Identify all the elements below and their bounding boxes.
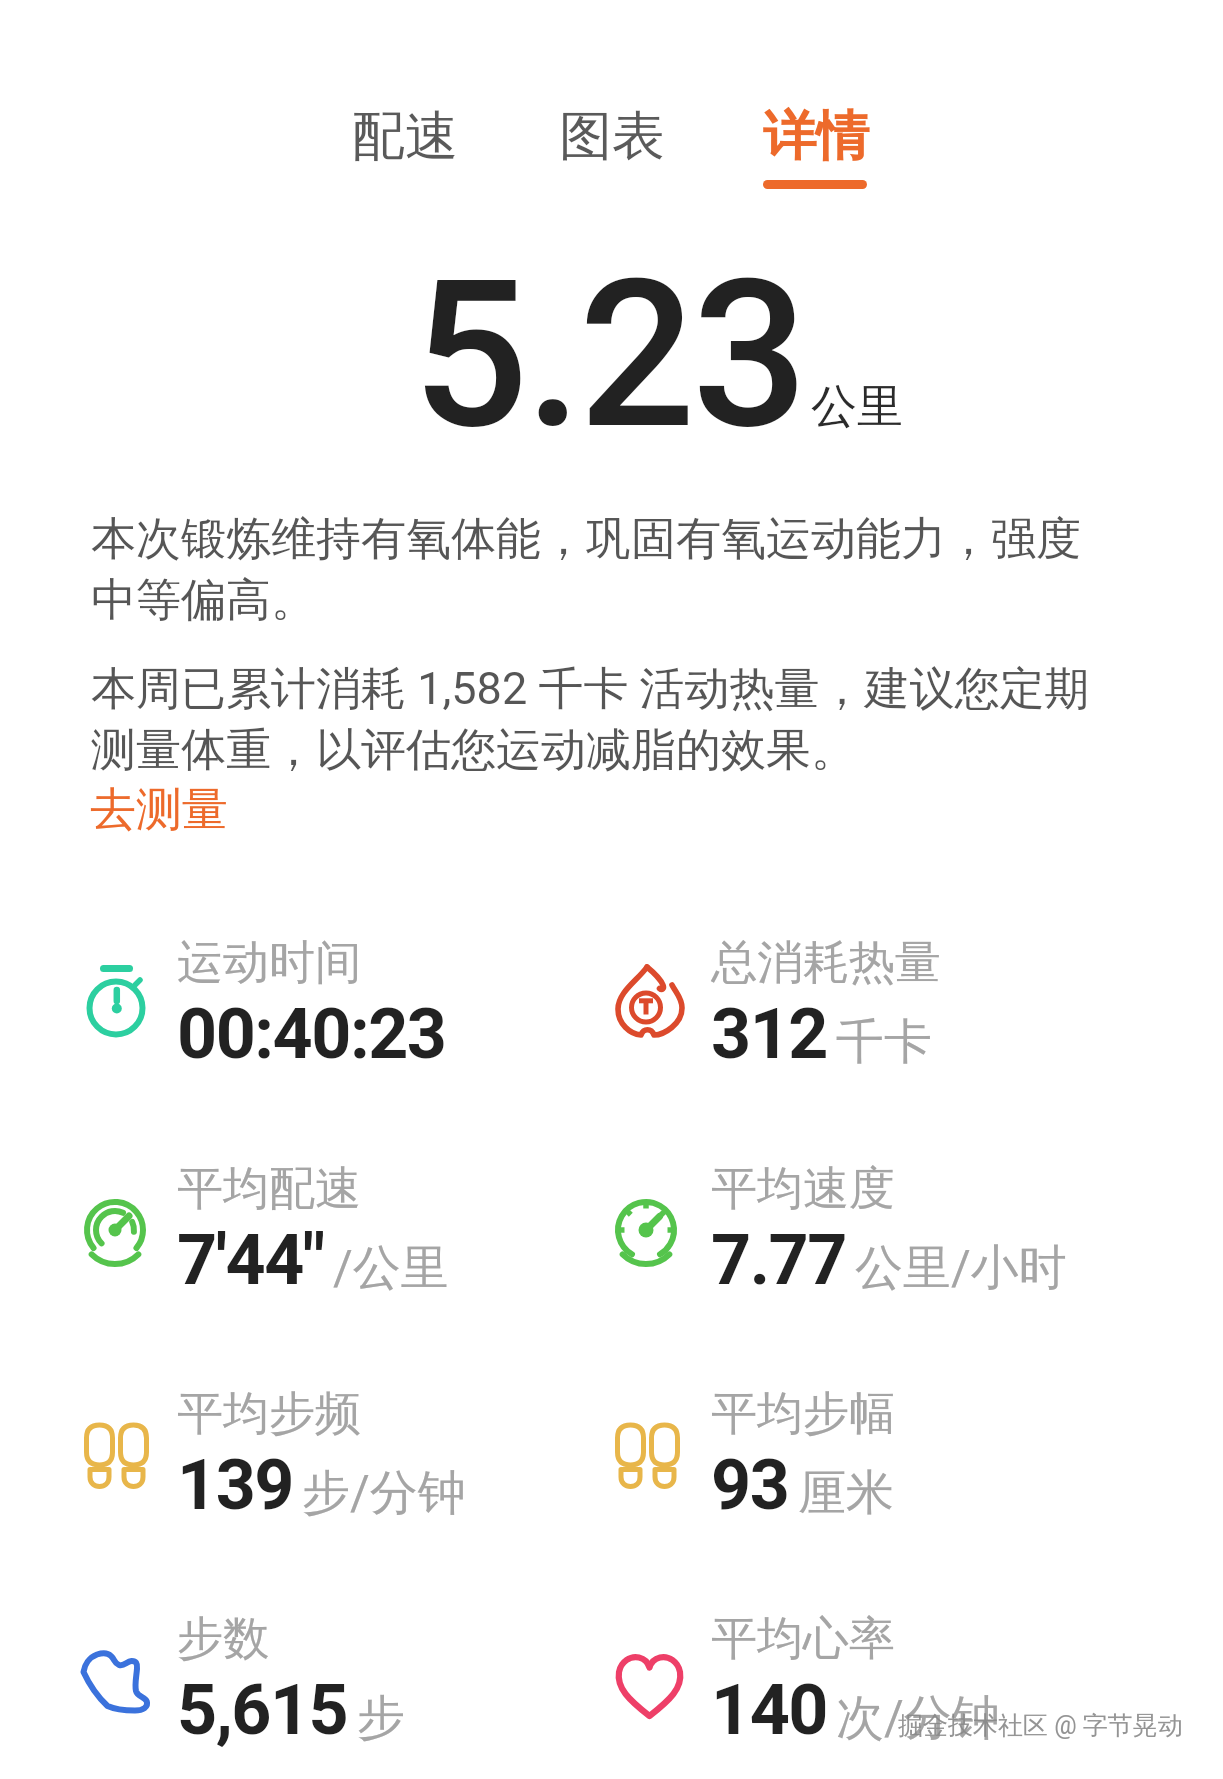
staticText: 步 [357,1688,405,1748]
staticText: 厘米 [798,1463,894,1523]
staticText: 运动时间 [177,934,361,992]
staticText: 千卡 [836,1012,932,1072]
button[interactable]: 图表 [559,103,665,170]
staticText: 7'44" [177,1219,324,1301]
staticText: 总消耗热量 [711,934,941,992]
staticText: 掘金技术社区 @ 字节晃动 [898,1710,1183,1741]
staticText: 配速 [352,103,458,170]
staticText: 步数 [177,1610,269,1668]
button[interactable]: 详情 [763,103,869,170]
staticText: 公里/小时 [855,1238,1067,1298]
staticText: 公里 [811,378,903,436]
staticText: 次/分钟 [836,1688,1000,1748]
staticText: 00:40:23 [177,993,446,1075]
staticText: 图表 [559,103,665,170]
staticText: /公里 [333,1238,449,1298]
staticText: 详情 [763,103,869,170]
staticText: 平均配速 [177,1160,361,1218]
staticText: 140 [711,1669,827,1751]
staticText: 平均速度 [711,1160,895,1218]
staticText: 5.23 [412,235,805,475]
staticText: 本周已累计消耗 1,582 千卡 活动热量，建议您定期 测量体重，以评估您运动减… [91,661,1090,778]
button[interactable]: 配速 [352,103,458,170]
staticText: 平均步幅 [711,1385,895,1443]
staticText: 139 [177,1444,293,1526]
staticText: 312 [711,993,827,1075]
staticText: 7.77 [711,1219,846,1301]
staticText: 本次锻炼维持有氧体能，巩固有氧运动能力，强度 中等偏高。 [91,511,1081,628]
staticText: 平均心率 [711,1610,895,1668]
staticText: 93 [711,1444,789,1526]
staticText: 步/分钟 [302,1463,466,1523]
staticText: 平均步频 [177,1385,361,1443]
staticText: 5,615 [177,1669,348,1751]
button[interactable]: 去测量 [90,781,228,839]
